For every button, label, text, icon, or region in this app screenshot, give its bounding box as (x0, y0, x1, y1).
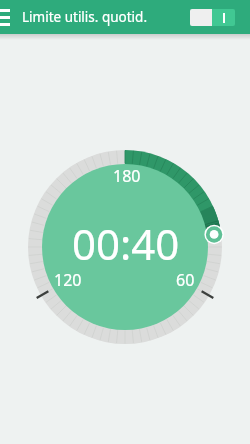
staticText: 60 (176, 269, 195, 291)
button[interactable] (0, 0, 14, 34)
staticText: Limite utilis. quotid. (22, 8, 148, 26)
staticText: 120 (54, 269, 82, 291)
staticText: 180 (113, 165, 141, 187)
staticText: 00:40 (72, 215, 180, 272)
button[interactable] (190, 9, 235, 26)
